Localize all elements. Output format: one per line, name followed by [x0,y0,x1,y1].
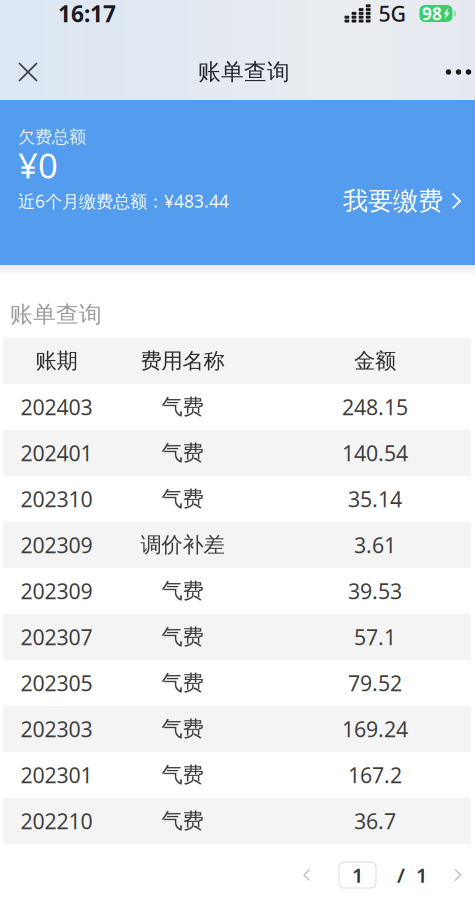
button[interactable]: More options [423,44,475,100]
staticText: 气费 [161,670,203,696]
button[interactable]: Next page [441,855,475,895]
staticText: 金额 [354,348,396,374]
staticText: 57.1 [354,623,396,651]
staticText: 202303 [20,715,92,743]
staticText: 36.7 [354,807,396,835]
button[interactable]: Close [0,44,56,100]
staticText: 费用名称 [140,348,224,374]
staticText: 202310 [20,485,92,513]
staticText: 98 [422,2,442,25]
staticText: 79.52 [348,669,402,697]
staticText: 气费 [161,486,203,512]
staticText: 气费 [161,808,203,834]
staticText: 1 [352,862,363,888]
staticText: 账单查询 [198,58,290,86]
staticText: 202307 [20,623,92,651]
staticText: 气费 [161,578,203,604]
staticText: 调价补差 [140,532,224,558]
staticText: 39.53 [348,577,402,605]
staticText: 账单查询 [10,301,102,328]
staticText: 248.15 [342,393,408,421]
staticText: 气费 [161,624,203,650]
staticText: 欠费总额 [18,126,86,148]
staticText: 202309 [20,577,92,605]
staticText: 140.54 [342,439,408,467]
staticText: 202210 [20,807,92,835]
staticText: 169.24 [342,715,408,743]
staticText: 账期 [35,348,77,374]
staticText: 202301 [20,761,92,789]
staticText: 气费 [161,716,203,742]
staticText: 1 [416,862,427,888]
staticText: 气费 [161,762,203,788]
button[interactable]: 我要缴费 [343,188,462,214]
staticText: 我要缴费 [343,185,443,216]
staticText: 35.14 [348,485,402,513]
staticText: 气费 [161,440,203,466]
staticText: 202403 [20,393,92,421]
staticText: / [397,862,405,888]
staticText: 167.2 [348,761,402,789]
staticText: 202305 [20,669,92,697]
staticText: 近6个月缴费总额：¥483.44 [18,189,229,212]
staticText: 202309 [20,531,92,559]
staticText: 16:17 [58,0,116,28]
staticText: 5G [378,0,406,28]
staticText: 气费 [161,394,203,420]
button[interactable]: 1 [339,862,376,888]
staticText: 202401 [20,439,92,467]
staticText: 3.61 [354,531,396,559]
staticText: ¥0 [18,142,58,188]
button[interactable]: Previous page [290,855,324,895]
